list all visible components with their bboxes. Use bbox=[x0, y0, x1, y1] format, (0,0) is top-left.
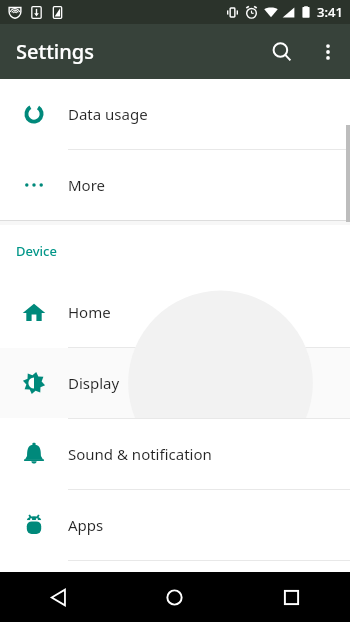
button[interactable]: Home bbox=[0, 277, 350, 347]
button[interactable]: Apps bbox=[0, 490, 350, 560]
button[interactable]: Home bbox=[116, 572, 233, 622]
staticText: Sound & notification bbox=[68, 444, 212, 464]
button[interactable]: Data usage bbox=[0, 79, 350, 149]
button[interactable]: More options bbox=[306, 30, 350, 74]
staticText: Display bbox=[68, 373, 120, 393]
button[interactable]: Back bbox=[0, 572, 116, 622]
button[interactable]: Sound & notification bbox=[0, 419, 350, 489]
staticText: Data usage bbox=[68, 104, 148, 124]
staticText: Settings bbox=[16, 38, 94, 65]
staticText: Apps bbox=[68, 515, 104, 535]
button[interactable]: Display bbox=[0, 348, 350, 418]
staticText: Home bbox=[68, 302, 111, 322]
staticText: More bbox=[68, 175, 106, 195]
button[interactable]: Search bbox=[258, 28, 306, 76]
button[interactable]: More bbox=[0, 150, 350, 220]
staticText: Device bbox=[16, 242, 57, 260]
staticText: 3:41 bbox=[317, 3, 343, 21]
button[interactable]: Recent apps bbox=[233, 572, 350, 622]
